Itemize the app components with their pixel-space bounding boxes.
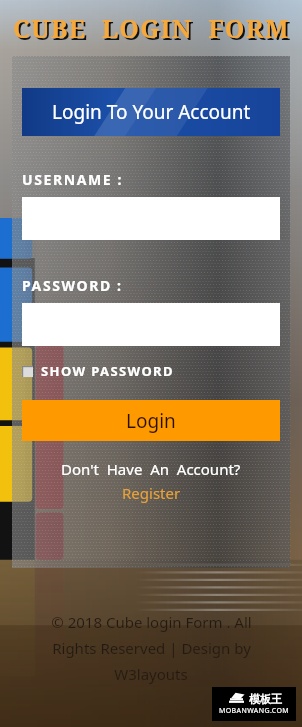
staticText: Don't Have An Account? (61, 459, 241, 479)
staticText: Login To Your Account (52, 99, 251, 125)
staticText: SHOW PASSWORD (41, 362, 174, 380)
button[interactable]: SHOW PASSWORD (22, 362, 174, 380)
staticText: W3layouts (114, 664, 188, 684)
staticText: MOBANWANG.COM (219, 706, 290, 716)
staticText: CUBE LOGIN FORM (15, 13, 292, 47)
staticText: Rights Reserved | Design by (52, 638, 251, 658)
staticText: 模板王 (249, 692, 282, 706)
button[interactable]: Login (22, 400, 280, 441)
other: mobanwang.com watermark (212, 687, 296, 721)
staticText: Register (122, 483, 181, 503)
button[interactable]: Register (122, 483, 181, 503)
staticText: CUBE LOGIN FORM (13, 11, 290, 45)
staticText: Login (126, 408, 176, 434)
staticText: © 2018 Cube login Form . All (51, 612, 252, 632)
button[interactable]: Login To Your Account (22, 88, 280, 136)
staticText: USERNAME : (22, 170, 124, 189)
staticText: PASSWORD : (22, 276, 123, 295)
